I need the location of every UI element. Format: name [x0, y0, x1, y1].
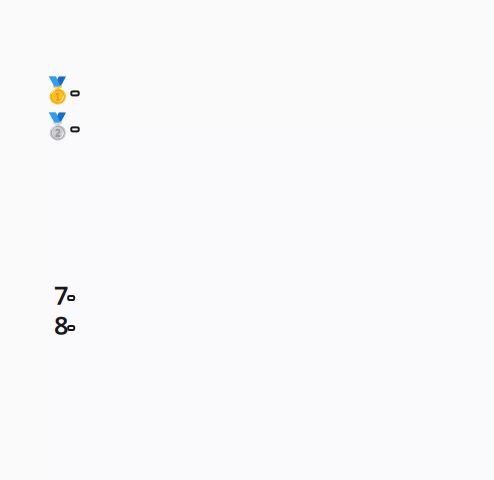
staticText: Jonas Weber	[74, 311, 189, 338]
button[interactable]: Rank 8, Jonas Weber	[54, 308, 484, 342]
staticText: 7	[54, 278, 68, 312]
button[interactable]: Rank 7, Ruby Nakamura	[54, 278, 484, 312]
staticText: 🥈	[42, 111, 74, 140]
staticText: Ruby Nakamura	[74, 281, 223, 308]
staticText: Amelia Park	[79, 77, 190, 103]
staticText: 8	[54, 308, 68, 342]
button[interactable]: Rank 1, Amelia Park	[42, 75, 472, 104]
button[interactable]: Rank 2, Noah Reyes	[42, 111, 472, 140]
staticText: Noah Reyes	[79, 113, 188, 139]
staticText: 🥇	[42, 75, 74, 104]
